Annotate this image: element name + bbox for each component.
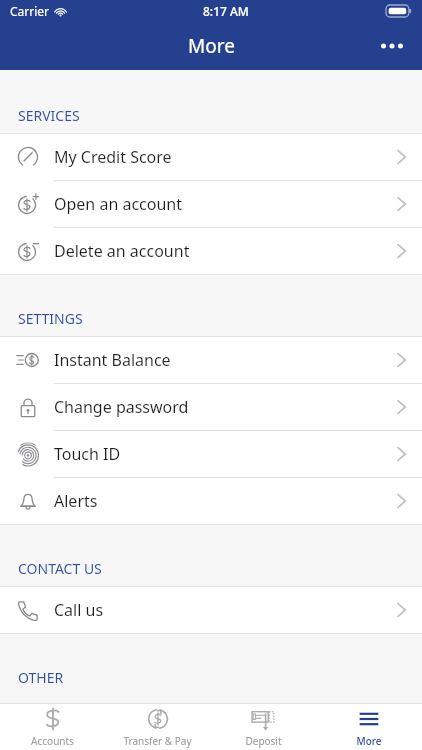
button[interactable]: Delete an account [0,228,422,274]
button[interactable]: More [316,704,422,750]
button[interactable]: Change password [0,384,422,430]
staticText: Touch ID [54,443,121,465]
staticText: Change password [54,396,189,418]
staticText: Alerts [54,490,98,512]
staticText: Transfer & Pay [123,734,192,748]
button[interactable]: Accounts [0,704,105,750]
staticText: OTHER [18,668,64,687]
button[interactable]: Call us [0,587,422,633]
staticText: My Credit Score [54,146,172,168]
staticText: Deposit [245,734,282,748]
staticText: Carrier [10,3,50,19]
button[interactable]: Alerts [0,478,422,524]
staticText: More [356,734,382,748]
staticText: Delete an account [54,240,190,262]
button[interactable]: Instant Balance [0,337,422,383]
button[interactable]: Deposit [210,704,316,750]
staticText: More [188,33,235,59]
button[interactable]: My Credit Score [0,134,422,180]
staticText: Instant Balance [54,349,171,371]
staticText: SETTINGS [18,309,83,328]
staticText: SERVICES [18,106,80,125]
staticText: Call us [54,599,104,621]
staticText: CONTACT US [18,559,102,578]
button[interactable]: Touch ID [0,431,422,477]
button[interactable]: Open an account [0,181,422,227]
staticText: 8:17 AM [203,3,249,19]
staticText: Open an account [54,193,183,215]
button[interactable]: Transfer & Pay [105,704,210,750]
staticText: Accounts [31,734,74,748]
button[interactable]: More options [370,24,414,68]
